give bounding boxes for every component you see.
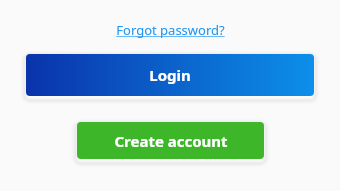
staticText: Create account: [114, 131, 228, 151]
button[interactable]: Create account: [77, 122, 264, 159]
staticText: Forgot password?: [116, 21, 225, 39]
staticText: Login: [149, 65, 191, 85]
button[interactable]: Login: [26, 54, 314, 96]
button[interactable]: Forgot password?: [116, 21, 225, 39]
